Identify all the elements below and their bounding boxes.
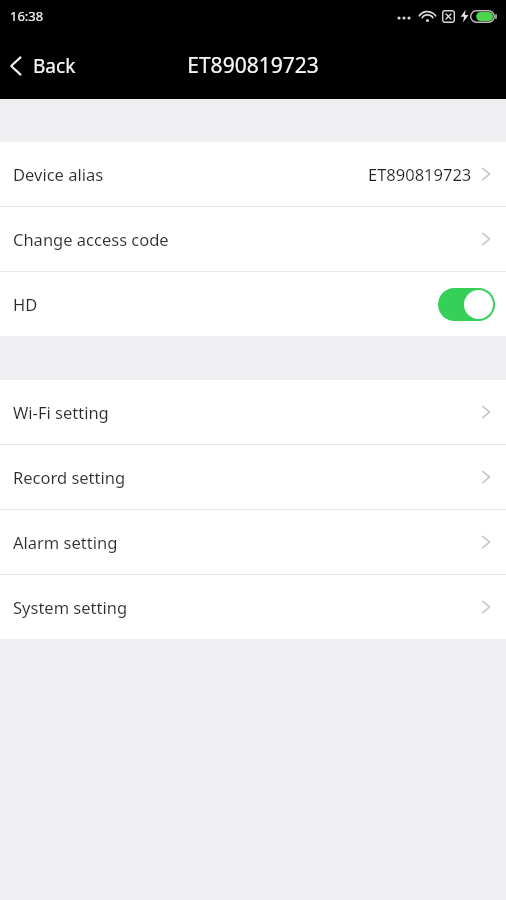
staticText: Wi-Fi setting (13, 401, 109, 423)
staticText: System setting (13, 596, 128, 618)
staticText: 16:38 (10, 7, 44, 25)
button[interactable]: Alarm setting (0, 510, 506, 574)
staticText: Back (33, 53, 76, 79)
button[interactable]: HD (0, 272, 506, 336)
staticText: ET890819723 (368, 163, 472, 185)
staticText: HD (13, 293, 38, 315)
button[interactable]: Wi-Fi setting (0, 380, 506, 444)
button[interactable]: HD toggle (438, 288, 495, 321)
staticText: Change access code (13, 228, 169, 250)
button[interactable]: System setting (0, 575, 506, 639)
button[interactable]: Back (0, 32, 90, 99)
button[interactable]: Device alias (0, 142, 506, 206)
staticText: Alarm setting (13, 531, 118, 553)
button[interactable]: Record setting (0, 445, 506, 509)
staticText: ET890819723 (187, 51, 319, 80)
staticText: Record setting (13, 466, 126, 488)
staticText: Device alias (13, 163, 104, 185)
button[interactable]: Change access code (0, 207, 506, 271)
